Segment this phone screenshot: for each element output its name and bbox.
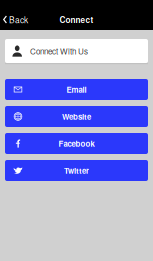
- staticText: Back: [9, 13, 28, 25]
- button[interactable]: Email: [5, 79, 148, 100]
- staticText: Website: [62, 111, 91, 122]
- button[interactable]: Back: [0, 10, 32, 28]
- staticText: Twitter: [64, 165, 89, 176]
- staticText: Facebook: [58, 138, 94, 149]
- button[interactable]: Connect With Us: [5, 39, 148, 64]
- staticText: Connect: [59, 14, 93, 25]
- staticText: Email: [66, 84, 86, 95]
- button[interactable]: Facebook: [5, 133, 148, 154]
- staticText: Connect With Us: [30, 45, 88, 57]
- button[interactable]: Twitter: [5, 160, 148, 181]
- button[interactable]: Website: [5, 106, 148, 127]
